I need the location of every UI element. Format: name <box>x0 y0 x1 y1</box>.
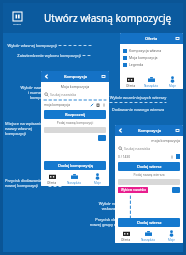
staticText: Moje <box>169 84 177 88</box>
staticText: Narzędzia <box>67 181 82 185</box>
button[interactable]: Narzędzia <box>63 172 86 186</box>
button[interactable]: Dodaj wiersz <box>118 162 180 171</box>
button[interactable]: OK <box>98 135 106 141</box>
staticText: Przycisk dodawania nowej grupy numerów <box>89 217 132 227</box>
staticText: Kompozycja <box>64 74 87 79</box>
button[interactable]: Więcej <box>175 36 180 41</box>
staticText: Kompozycja własna <box>129 48 162 53</box>
staticText: Oferta <box>121 238 131 242</box>
staticText: Zatwierdzenie wyboru kompozycji <box>17 53 81 58</box>
staticText: moja kompozycja <box>118 138 180 143</box>
staticText: Narzędzia <box>144 84 159 88</box>
button[interactable]: Więcej <box>175 128 180 133</box>
staticText: Moje <box>168 238 176 242</box>
staticText: Szukaj nazwiska <box>124 146 151 151</box>
staticText: Podaj nazwę kompozycji <box>44 121 106 125</box>
staticText: Kreibix <box>13 22 22 25</box>
button[interactable]: Moje <box>160 229 183 243</box>
button[interactable]: Oferta <box>41 172 63 186</box>
staticText: Dodawanie nowego wiersza <box>107 107 169 112</box>
staticText: Wybór numeru do wskazanej grupy <box>98 201 133 211</box>
button[interactable]: Moje <box>162 75 183 89</box>
staticText: Przycisk dodawania nowej kompozycji <box>5 178 51 188</box>
button[interactable]: Dodaj kompozycję <box>44 161 106 170</box>
staticText: Dodaj wiersz <box>137 164 162 169</box>
staticText: Kompozycja <box>138 128 161 133</box>
staticText: Szukaj nazwiska <box>50 92 77 97</box>
staticText: moja kompozycja <box>44 103 90 107</box>
button[interactable]: Oferta <box>120 75 141 89</box>
staticText: Wybór wcześniejszych wierszy <box>107 95 169 100</box>
button[interactable]: Wstecz <box>118 128 123 133</box>
button[interactable]: Legenda <box>123 62 180 67</box>
button[interactable]: Kompozycja własna <box>123 48 180 53</box>
staticText: Rozpocznij <box>65 112 86 117</box>
staticText: Miejsce na wpisanie nazwy własnej kompoz… <box>5 121 51 136</box>
staticText: Oferta <box>145 36 158 41</box>
staticText: Oferta <box>126 84 136 88</box>
button[interactable]: Narzędzia <box>137 229 160 243</box>
button[interactable]: Moja kompozycja <box>123 55 180 60</box>
button[interactable]: Oferta <box>115 229 137 243</box>
button[interactable]: Wstecz <box>44 74 49 79</box>
button[interactable]: Rozpocznij <box>44 110 106 119</box>
button[interactable]: Wybierz nazwisko <box>118 187 148 193</box>
staticText: Narzędzia <box>141 238 156 242</box>
staticText: 0 / 1430 <box>118 155 170 159</box>
staticText: Legenda <box>129 62 144 67</box>
staticText: Dodaj kompozycję <box>58 163 93 168</box>
staticText: Wybór własnej kompozycji <box>7 43 57 48</box>
staticText: Podaj nazwę wiersza <box>118 173 180 177</box>
staticText: Dodaj wiersz <box>137 220 162 225</box>
staticText: Wybierz nazwisko <box>121 188 146 192</box>
staticText: Utwórz własną kompozycję <box>44 11 172 25</box>
button[interactable]: Narzędzia <box>141 75 162 89</box>
staticText: Moja kompozycja <box>44 84 106 89</box>
staticText: Moje <box>94 181 102 185</box>
button[interactable]: Moje <box>86 172 109 186</box>
button[interactable]: OK <box>172 187 180 193</box>
button[interactable]: Dodaj wiersz <box>118 218 180 227</box>
button[interactable]: Więcej <box>101 74 106 79</box>
staticText: Wybór nazwiska i numeru do kompozycji <box>5 85 51 100</box>
staticText: Oferta <box>47 181 57 185</box>
staticText: Moja kompozycja <box>129 55 158 60</box>
